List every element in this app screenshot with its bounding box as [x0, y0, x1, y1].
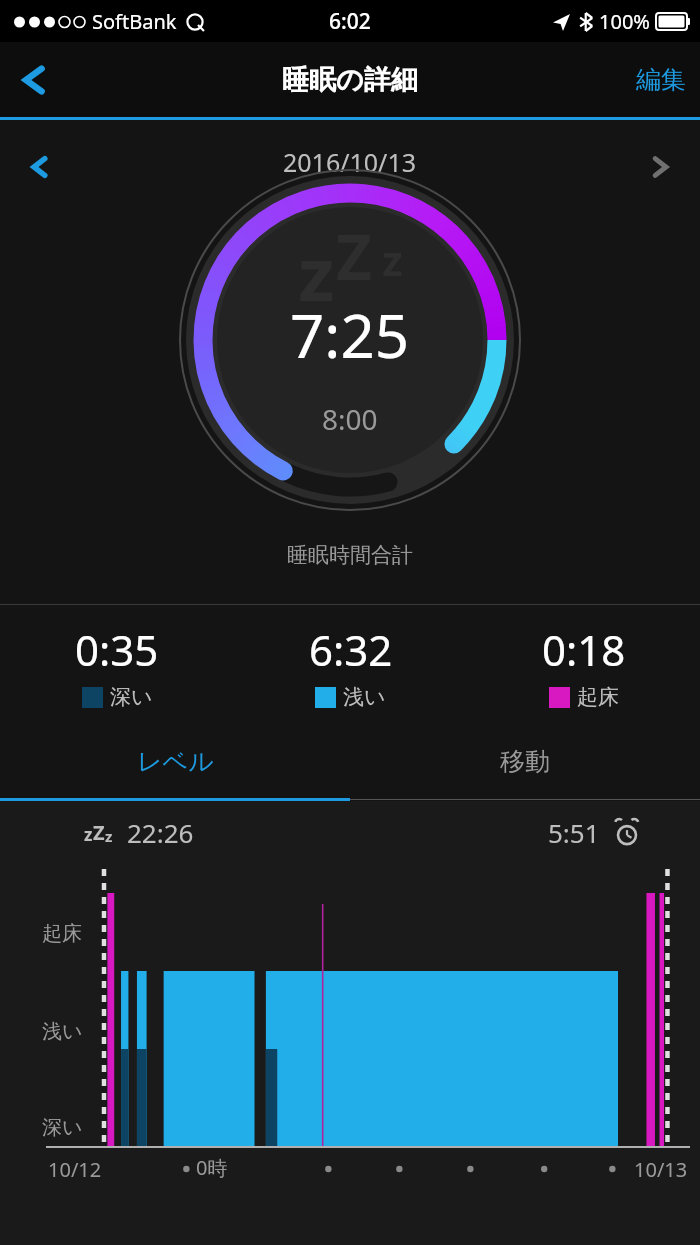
button[interactable]: 0:35: [0, 605, 234, 725]
staticText: 起床: [42, 921, 82, 946]
staticText: 浅い: [42, 1019, 83, 1044]
staticText: z: [382, 231, 403, 288]
staticText: 深い: [42, 1115, 83, 1140]
staticText: 編集: [636, 64, 686, 95]
staticText: 6:32: [309, 621, 393, 678]
button[interactable]: 6:32: [234, 605, 467, 725]
staticText: 起床: [577, 684, 619, 710]
button[interactable]: 編集: [636, 64, 686, 95]
button[interactable]: 移動: [350, 725, 700, 798]
staticText: 5:51: [548, 815, 600, 850]
staticText: 深い: [110, 684, 153, 710]
staticText: 睡眠時間合計: [287, 542, 413, 568]
staticText: 0時: [196, 1154, 228, 1181]
staticText: 8:00: [322, 400, 378, 438]
staticText: 2016/10/13: [283, 145, 417, 179]
button[interactable]: 0:18: [467, 605, 700, 725]
staticText: 10/12: [48, 1156, 102, 1183]
staticText: 6:02: [329, 7, 371, 36]
staticText: Z: [336, 214, 372, 298]
staticText: 移動: [500, 746, 550, 777]
staticText: 22:26: [127, 815, 194, 850]
button[interactable]: レベル: [0, 725, 350, 798]
staticText: レベル: [137, 746, 214, 777]
staticText: z: [84, 823, 93, 846]
staticText: z: [105, 826, 113, 846]
button[interactable]: Next day: [620, 132, 700, 202]
staticText: z: [298, 222, 335, 323]
staticText: 浅い: [343, 684, 386, 710]
staticText: 10/13: [634, 1156, 688, 1183]
staticText: 睡眠の詳細: [282, 63, 418, 97]
staticText: 7:25: [290, 294, 410, 376]
button[interactable]: Previous day: [0, 132, 80, 202]
staticText: 0:35: [75, 621, 159, 678]
staticText: SoftBank: [92, 8, 177, 35]
staticText: 100%: [599, 8, 650, 35]
button[interactable]: Back: [0, 45, 70, 115]
staticText: Z: [93, 819, 105, 846]
staticText: 0:18: [542, 621, 626, 678]
